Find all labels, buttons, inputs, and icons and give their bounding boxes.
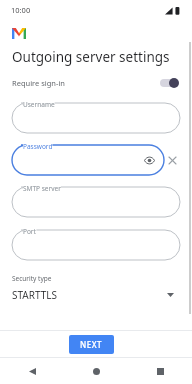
button[interactable]: Require sign-in toggle [158, 77, 180, 89]
button[interactable]: Show password [142, 153, 156, 167]
button[interactable]: NEXT [69, 335, 114, 354]
staticText: Security type [12, 274, 52, 283]
staticText: 10:00 [11, 5, 31, 15]
staticText: Outgoing server settings [12, 48, 170, 66]
button[interactable]: Port [12, 230, 180, 260]
button[interactable]: Password [12, 145, 164, 175]
button[interactable]: Username [12, 103, 180, 133]
staticText: SMTP server [23, 184, 61, 193]
button[interactable]: Back [0, 358, 64, 384]
button[interactable]: Home [64, 358, 128, 384]
button[interactable]: Clear password [164, 152, 180, 168]
staticText: STARTTLS [12, 288, 167, 302]
button[interactable]: SMTP server [12, 187, 180, 217]
staticText: Require sign-in [12, 78, 158, 88]
staticText: Password [23, 142, 53, 151]
button[interactable]: Security type [12, 274, 180, 302]
staticText: Username [23, 100, 55, 109]
staticText: Port [23, 227, 36, 236]
button[interactable]: Require sign-in [12, 74, 180, 92]
staticText: NEXT [80, 339, 103, 350]
button[interactable]: Recent apps [128, 358, 192, 384]
